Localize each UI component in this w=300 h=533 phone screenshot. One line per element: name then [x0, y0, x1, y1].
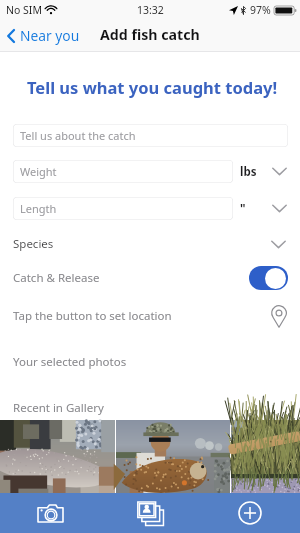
button[interactable]: Photo 1: [0, 420, 115, 493]
staticText: 97%: [250, 3, 271, 17]
staticText: ": [240, 201, 246, 217]
staticText: Tell us about the catch: [20, 128, 136, 143]
button[interactable]: Catch & Release: [0, 264, 300, 292]
staticText: Tell us what you caught today!: [27, 76, 278, 98]
other: Set location: [271, 305, 287, 328]
button[interactable]: Species: [0, 231, 300, 257]
staticText: Near you: [20, 26, 80, 45]
staticText: Recent in Gallery: [13, 400, 104, 416]
button[interactable]: Tap the button to set location: [0, 302, 300, 330]
staticText: Length: [20, 201, 57, 216]
staticText: Tap the button to set location: [13, 308, 172, 324]
staticText: Catch & Release: [13, 270, 100, 286]
button[interactable]: Add catch: [200, 493, 300, 533]
staticText: Add fish catch: [100, 25, 200, 44]
staticText: Weight: [20, 164, 57, 179]
staticText: lbs: [240, 164, 257, 180]
button[interactable]: Tell us about the catch: [13, 124, 288, 147]
button[interactable]: Near you: [0, 26, 88, 45]
staticText: 13:32: [137, 3, 164, 17]
staticText: Species: [13, 236, 54, 252]
staticText: No SIM: [6, 3, 42, 17]
button[interactable]: Weight: [13, 160, 233, 183]
button[interactable]: Photo 2: [116, 420, 230, 493]
button[interactable]: Gallery: [100, 493, 200, 533]
button[interactable]: Photo 3: [231, 420, 300, 493]
button[interactable]: Take photo: [0, 493, 100, 533]
button[interactable]: Length: [13, 197, 233, 220]
staticText: Your selected photos: [13, 354, 127, 370]
